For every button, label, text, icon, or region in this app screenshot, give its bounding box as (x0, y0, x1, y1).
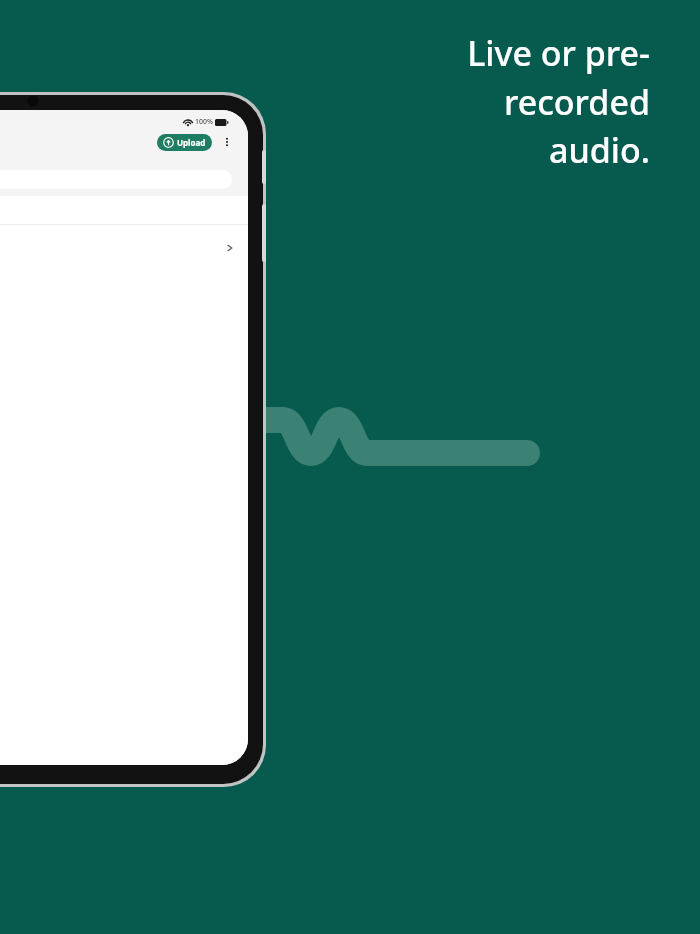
button[interactable]: More options (218, 133, 236, 151)
staticText: Live or pre- recorded audio. (350, 30, 650, 173)
button[interactable]: Upload (157, 134, 212, 151)
button[interactable] (0, 225, 248, 271)
staticText: Upload (177, 137, 206, 148)
staticText: 100% (195, 117, 213, 127)
